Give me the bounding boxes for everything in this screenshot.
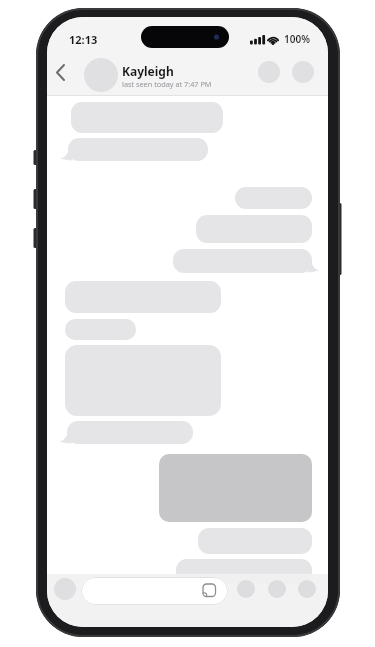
button[interactable] — [237, 580, 255, 598]
button[interactable] — [54, 578, 76, 600]
button[interactable] — [84, 58, 118, 92]
staticText: Kayleigh — [122, 63, 174, 79]
staticText: 12:13 — [69, 32, 98, 47]
staticText: 100% — [284, 32, 310, 46]
button[interactable] — [81, 577, 228, 605]
button[interactable] — [268, 580, 286, 598]
button[interactable] — [292, 61, 314, 83]
button[interactable] — [298, 580, 316, 598]
button[interactable] — [258, 61, 280, 83]
button[interactable] — [159, 454, 312, 522]
button[interactable] — [51, 61, 73, 89]
staticText: last seen today at 7:47 PM — [122, 79, 212, 89]
